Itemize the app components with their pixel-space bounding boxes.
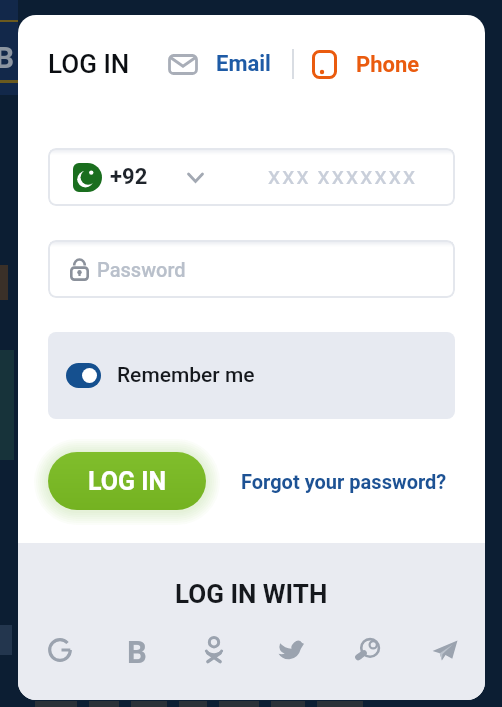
- button[interactable]: Phone: [312, 50, 420, 79]
- staticText: Phone: [356, 52, 420, 78]
- staticText: LOG IN: [88, 467, 167, 496]
- button[interactable]: [429, 634, 461, 666]
- button[interactable]: +92: [48, 148, 455, 206]
- staticText: +92: [110, 164, 148, 190]
- button[interactable]: Password: [48, 240, 455, 298]
- button[interactable]: [44, 634, 76, 666]
- staticText: Email: [216, 51, 271, 77]
- staticText: B: [127, 634, 147, 666]
- staticText: Remember me: [117, 363, 255, 388]
- staticText: Password: [97, 258, 186, 281]
- button[interactable]: [275, 634, 307, 666]
- staticText: XXX XXXXXXX: [268, 166, 418, 188]
- staticText: B: [0, 40, 15, 75]
- staticText: LOG IN: [48, 49, 130, 79]
- button[interactable]: [352, 634, 384, 666]
- button[interactable]: B: [121, 634, 153, 666]
- button[interactable]: LOG IN: [48, 452, 206, 510]
- staticText: Forgot your password?: [241, 470, 447, 493]
- button[interactable]: Email: [168, 51, 271, 77]
- button[interactable]: [198, 634, 230, 666]
- staticText: LOG IN WITH: [175, 579, 328, 609]
- button[interactable]: Forgot your password?: [224, 452, 464, 510]
- button[interactable]: Remember me: [48, 332, 455, 419]
